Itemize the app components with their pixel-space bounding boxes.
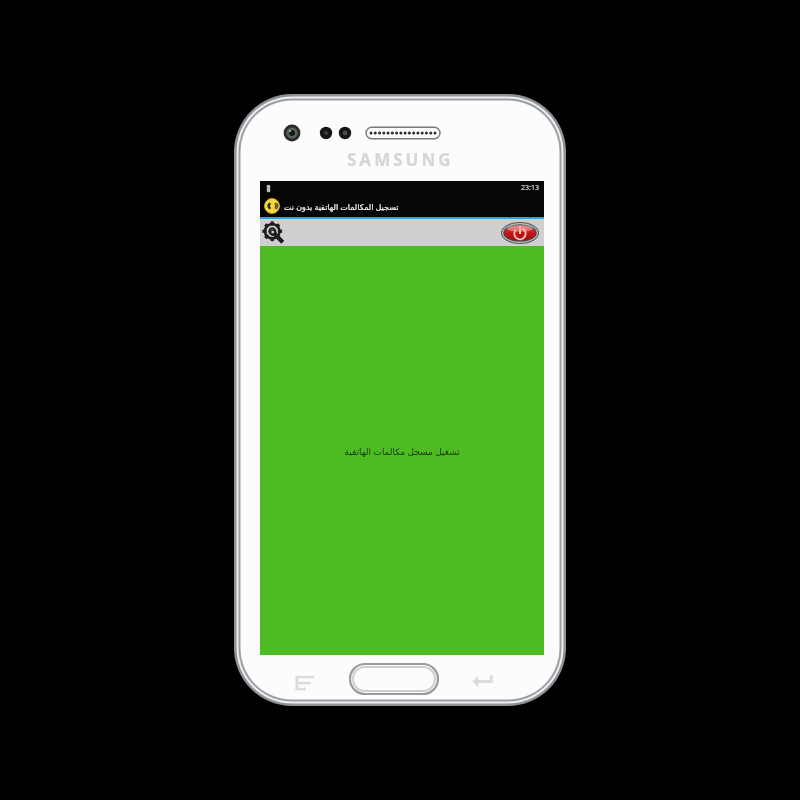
button[interactable]: Settings bbox=[263, 222, 285, 244]
button[interactable]: Back bbox=[470, 668, 496, 694]
button[interactable]: Menu bbox=[292, 668, 318, 694]
button[interactable]: Power bbox=[501, 222, 539, 244]
staticText: تشغيل مسجل مكالمات الهاتفية bbox=[344, 445, 460, 457]
button[interactable]: Home bbox=[350, 664, 438, 694]
staticText: 23:13 bbox=[521, 183, 539, 193]
staticText: SAMSUNG bbox=[347, 148, 454, 171]
staticText: تسجيل المكالمات الهاتفية بدون نت bbox=[284, 201, 540, 212]
